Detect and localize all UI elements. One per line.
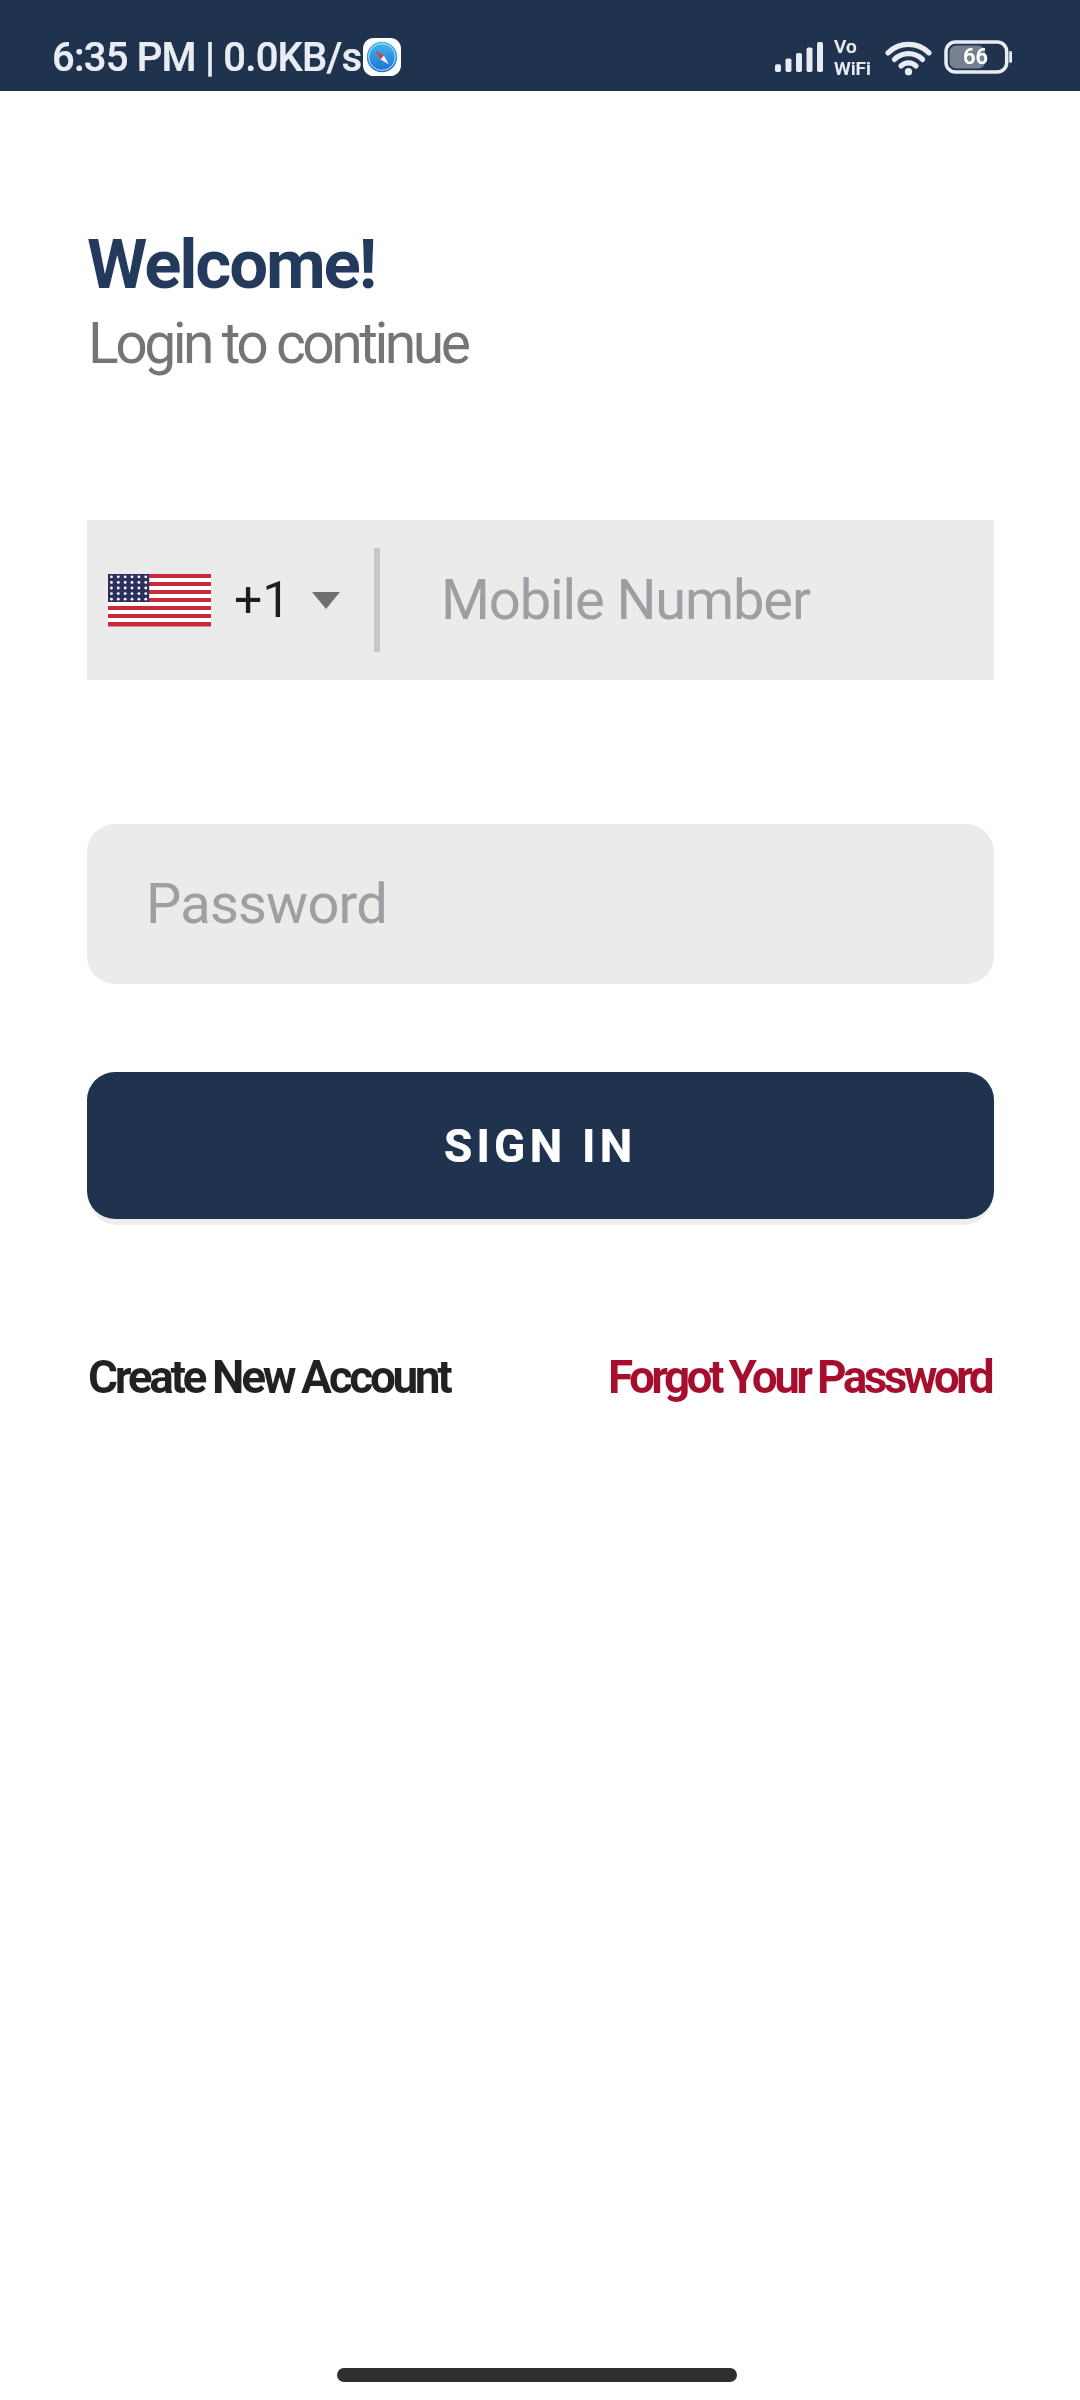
staticText: Welcome! [87,224,376,305]
staticText: Forgot Your Password [608,1350,992,1404]
staticText: 66 [963,44,989,70]
staticText: Login to continue [88,310,468,377]
button[interactable]: Create New Account [88,1350,450,1404]
button[interactable]: Forgot Your Password [608,1350,992,1404]
staticText: Mobile Number [441,567,810,633]
staticText: Vo [834,35,857,57]
staticText: Create New Account [88,1350,450,1404]
staticText: Password [146,871,387,937]
button[interactable]: +1 [87,520,994,680]
staticText: +1 [234,571,291,630]
staticText: 6:35 PM | 0.0KB/s [52,34,362,81]
staticText: SIGN IN [444,1119,637,1173]
staticText: WiFi [834,57,871,79]
button[interactable]: SIGN IN [87,1072,994,1219]
button[interactable]: Password [87,824,994,984]
